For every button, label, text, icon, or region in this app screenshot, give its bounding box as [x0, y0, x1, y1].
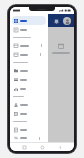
button[interactable]: Recents — [20, 143, 28, 151]
button[interactable] — [12, 66, 46, 75]
button[interactable]: Home — [38, 143, 46, 151]
button[interactable] — [12, 50, 46, 59]
button[interactable] — [48, 14, 74, 142]
button[interactable] — [12, 84, 46, 93]
button[interactable]: Back — [56, 143, 64, 151]
button[interactable] — [12, 100, 46, 109]
button[interactable] — [12, 125, 46, 134]
button[interactable] — [12, 16, 46, 25]
button[interactable]: Account — [63, 17, 71, 25]
button[interactable]: Notifications — [53, 18, 60, 25]
button[interactable] — [12, 75, 46, 84]
button[interactable] — [12, 109, 46, 118]
button[interactable] — [12, 134, 46, 142]
button[interactable] — [12, 25, 46, 34]
button[interactable] — [12, 41, 46, 50]
